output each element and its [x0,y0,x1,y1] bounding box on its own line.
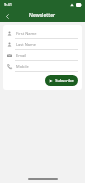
button[interactable]: Last Name [7,39,78,50]
staticText: Email [16,53,27,58]
staticText: Last Name [16,42,37,47]
staticText: 9:41 [4,2,12,7]
staticText: Mobile [16,64,29,69]
button[interactable]: Email [7,50,78,61]
staticText: Subscribe [55,78,74,83]
button[interactable]: Mobile [7,61,78,72]
staticText: First Name [16,31,37,36]
button[interactable]: Back [2,11,12,21]
staticText: Newsletter [29,12,56,19]
button[interactable]: First Name [7,28,78,39]
button[interactable]: Subscribe [45,75,78,86]
